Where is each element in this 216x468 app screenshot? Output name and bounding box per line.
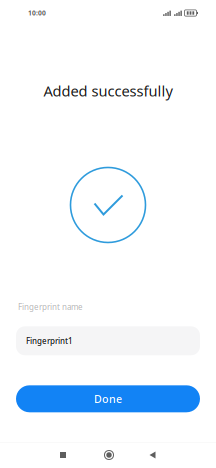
staticText: Fingerprint name <box>18 302 83 312</box>
staticText: Fingerprint1 <box>26 335 73 346</box>
button[interactable]: Done <box>16 385 200 412</box>
staticText: 10:00 <box>28 9 46 17</box>
staticText: Added successfully <box>43 81 172 100</box>
button[interactable]: Back <box>132 438 178 468</box>
staticText: Done <box>94 392 122 406</box>
button[interactable]: Home <box>86 438 132 468</box>
button[interactable]: Recents <box>40 438 86 468</box>
